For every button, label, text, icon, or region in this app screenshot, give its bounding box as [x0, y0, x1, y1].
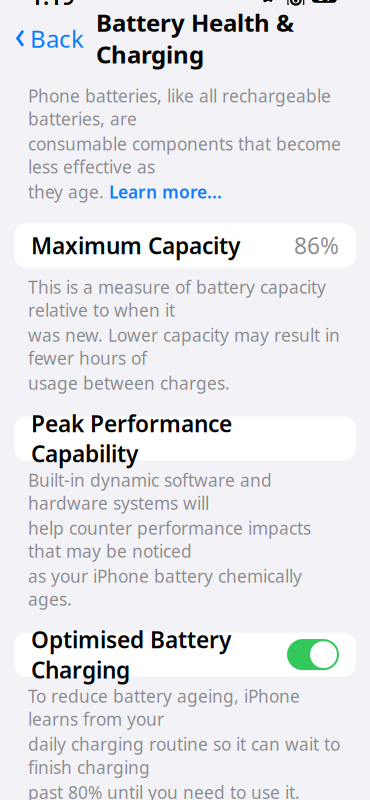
staticText: Phone batteries, like all rechargeable b…	[28, 84, 331, 130]
button[interactable]: Maximum Capacity	[14, 223, 356, 267]
button[interactable]: Back	[6, 16, 92, 60]
staticText: was new. Lower capacity may result in fe…	[28, 323, 340, 369]
staticText: Optimised Battery Charging	[31, 624, 231, 685]
staticText: Back	[30, 22, 84, 54]
staticText: 86%	[294, 230, 339, 260]
staticText: Learn more...	[109, 180, 222, 203]
staticText: usage between charges.	[28, 371, 230, 394]
staticText: Battery Health & Charging	[96, 6, 294, 70]
button[interactable]: Peak Performance Capability	[14, 416, 356, 460]
staticText: This is a measure of battery capacity re…	[28, 275, 326, 321]
staticText: past 80% until you need to use it.	[28, 781, 300, 800]
staticText: as your iPhone battery chemically ages.	[28, 565, 302, 611]
staticText: Built-in dynamic software and hardware s…	[28, 468, 272, 514]
staticText: Peak Performance Capability	[31, 408, 232, 469]
staticText: they age.	[28, 180, 104, 203]
staticText: 81	[317, 0, 331, 4]
staticText: Maximum Capacity	[31, 230, 240, 260]
staticText: help counter performance impacts that ma…	[28, 516, 311, 562]
staticText: daily charging routine so it can wait to…	[28, 733, 340, 779]
staticText: To reduce battery ageing, iPhone learns …	[28, 685, 300, 731]
staticText: consumable components that become less e…	[28, 132, 341, 178]
staticText: 1:19	[30, 0, 75, 11]
button[interactable]: Optimised Battery Charging	[14, 633, 356, 677]
